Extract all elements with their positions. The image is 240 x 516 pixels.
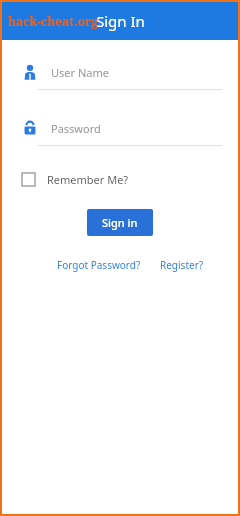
button[interactable]: User name xyxy=(2,64,238,90)
staticText: hack-cheat.org xyxy=(8,13,99,29)
button[interactable]: Forgot Password? xyxy=(57,258,141,272)
staticText: Sign in xyxy=(102,215,138,230)
staticText: Password xyxy=(51,121,101,136)
button[interactable]: Register? xyxy=(160,258,204,272)
other: Password xyxy=(22,120,38,136)
staticText: Sign In xyxy=(96,11,145,31)
staticText: Register? xyxy=(160,258,204,272)
staticText: User Name xyxy=(51,65,109,80)
button[interactable]: Remember Me? xyxy=(22,172,129,187)
other: User name xyxy=(22,64,38,80)
button[interactable]: Sign in xyxy=(87,209,153,236)
staticText: Remember Me? xyxy=(47,172,129,187)
button[interactable]: Password xyxy=(2,120,238,146)
staticText: Forgot Password? xyxy=(57,258,141,272)
